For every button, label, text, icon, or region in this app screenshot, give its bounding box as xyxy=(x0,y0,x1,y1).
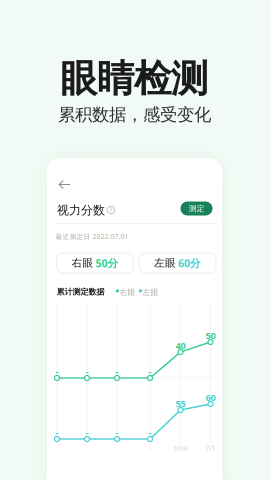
staticText: - xyxy=(85,426,88,439)
staticText: 40 xyxy=(175,339,185,352)
staticText: - xyxy=(85,365,88,378)
button[interactable]: Help xyxy=(105,204,117,216)
staticText: 左眼 xyxy=(142,287,158,297)
staticText: 左眼 xyxy=(154,256,176,269)
staticText: 眼睛检测 xyxy=(60,56,208,102)
staticText: 右眼 xyxy=(71,256,93,269)
staticText: ? xyxy=(109,206,112,214)
button[interactable]: 右眼 xyxy=(56,253,133,273)
staticText: - xyxy=(115,365,118,378)
staticText: 60分 xyxy=(178,256,201,270)
staticText: 累计测定数据 xyxy=(56,287,104,297)
staticText: 50 xyxy=(205,329,215,342)
staticText: 7/1 xyxy=(205,444,215,452)
staticText: 视力分数 xyxy=(57,203,105,218)
staticText: - xyxy=(148,426,151,439)
staticText: - xyxy=(149,444,151,452)
staticText: 右眼 xyxy=(119,287,135,297)
staticText: 累积数据，感受变化 xyxy=(58,104,211,125)
staticText: - xyxy=(55,426,58,439)
staticText: 60 xyxy=(205,391,215,404)
staticText: 55 xyxy=(175,397,185,410)
button[interactable]: Back xyxy=(53,172,77,196)
staticText: 6/30 xyxy=(173,444,187,452)
staticText: 最近测定日 2022.07.01 xyxy=(55,232,128,241)
staticText: - xyxy=(55,365,58,378)
staticText: - xyxy=(115,426,118,439)
button[interactable]: 测定 xyxy=(180,201,212,215)
button[interactable]: 左眼 xyxy=(139,253,216,273)
staticText: 测定 xyxy=(188,204,204,213)
staticText: 50分 xyxy=(95,256,118,270)
staticText: - xyxy=(148,365,151,378)
